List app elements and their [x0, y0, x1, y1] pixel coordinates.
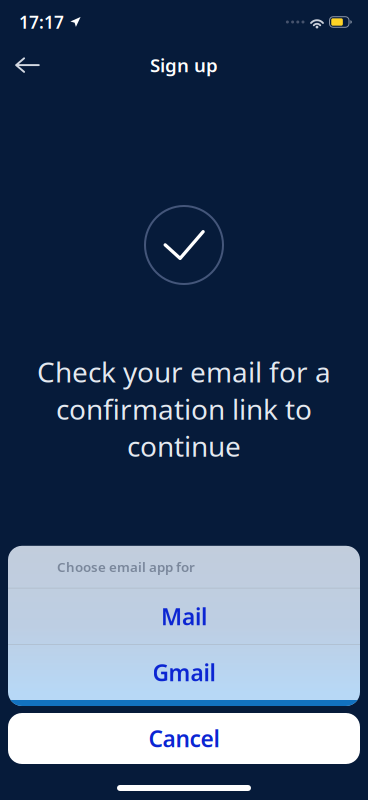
staticText: Check your email for a [37, 353, 331, 390]
staticText: Sign up [150, 53, 218, 77]
button[interactable]: Back [0, 44, 60, 86]
button[interactable]: Gmail [8, 645, 360, 700]
staticText: Choose email app for [57, 558, 195, 576]
staticText: continue [127, 427, 241, 465]
staticText: 17:17 [19, 10, 64, 33]
staticText: Mail [161, 601, 207, 631]
staticText: Cancel [148, 723, 219, 753]
button[interactable]: Mail [8, 588, 360, 644]
button[interactable]: Cancel [0, 713, 368, 764]
staticText: confirmation link to [56, 390, 312, 427]
staticText: Gmail [152, 657, 215, 687]
